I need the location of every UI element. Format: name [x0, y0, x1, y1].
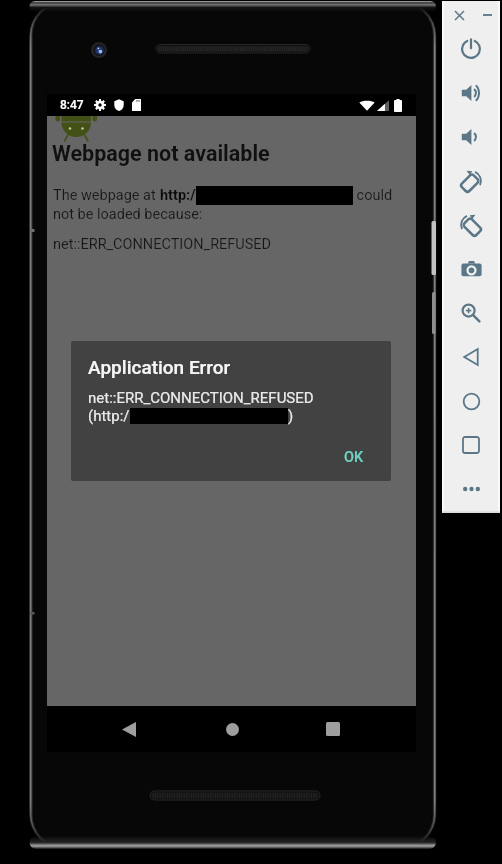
button[interactable]: Home: [215, 712, 249, 746]
button[interactable]: Recents: [316, 712, 350, 746]
staticText: http:/: [160, 187, 196, 204]
button[interactable]: Overview: [449, 423, 493, 467]
button[interactable]: More: [449, 467, 493, 511]
button[interactable]: Home: [449, 379, 493, 423]
button[interactable]: Back: [112, 712, 146, 746]
staticText: not be loaded because:: [53, 206, 203, 223]
staticText: The webpage at: [53, 187, 160, 204]
staticText: ): [288, 407, 294, 425]
staticText: Application Error: [88, 356, 231, 378]
staticText: OK: [344, 449, 364, 466]
button[interactable]: Zoom: [449, 291, 493, 335]
button[interactable]: Back: [449, 335, 493, 379]
staticText: net::ERR_CONNECTION_REFUSED: [88, 389, 314, 407]
button[interactable]: Power: [449, 27, 493, 71]
button[interactable]: Take screenshot: [449, 247, 493, 291]
button[interactable]: Rotate right: [449, 159, 493, 203]
staticText: (http:/: [88, 407, 130, 425]
staticText: 8:47: [60, 98, 84, 112]
button[interactable]: OK: [334, 442, 374, 472]
button[interactable]: Minimize: [476, 4, 498, 26]
staticText: Webpage not available: [52, 141, 270, 166]
staticText: could: [353, 187, 393, 204]
button[interactable]: Volume down: [449, 115, 493, 159]
button[interactable]: Close: [448, 4, 470, 26]
button[interactable]: Rotate left: [449, 203, 493, 247]
button[interactable]: Volume up: [449, 71, 493, 115]
staticText: net::ERR_CONNECTION_REFUSED: [53, 236, 272, 253]
